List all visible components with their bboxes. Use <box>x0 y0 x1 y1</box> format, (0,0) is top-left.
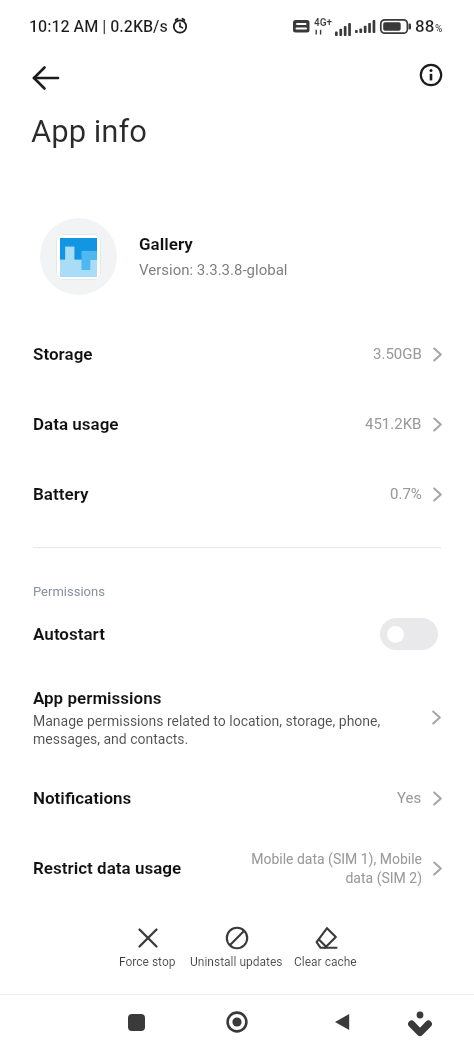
staticText: Version: 3.3.3.8-global <box>139 261 288 279</box>
button[interactable]: App permissions <box>0 676 474 758</box>
button[interactable]: Uninstall updates <box>166 926 306 978</box>
staticText: Autostart <box>33 624 105 644</box>
button[interactable]: Clear cache <box>255 926 395 978</box>
staticText: Data usage <box>33 414 119 434</box>
button[interactable]: Restrict data usage <box>0 833 474 903</box>
staticText: Manage permissions related to location, … <box>33 713 381 748</box>
button[interactable] <box>380 618 438 650</box>
staticText: 451.2KB <box>365 415 422 433</box>
button[interactable] <box>124 1010 148 1034</box>
staticText: Mobile data (SIM 1), Mobile data (SIM 2) <box>251 851 422 886</box>
button[interactable] <box>412 56 450 94</box>
button[interactable]: Data usage <box>0 389 474 459</box>
staticText: App permissions <box>33 688 162 708</box>
staticText: 3.50GB <box>373 345 422 363</box>
staticText: Clear cache <box>294 955 357 969</box>
button[interactable] <box>406 1002 434 1042</box>
button[interactable] <box>330 1010 354 1034</box>
button[interactable]: Autostart <box>0 601 474 667</box>
staticText: % <box>435 23 443 35</box>
staticText: 88 <box>415 16 435 36</box>
staticText: Yes <box>397 789 422 807</box>
staticText: Uninstall updates <box>190 955 283 969</box>
staticText: Battery <box>33 484 89 504</box>
staticText: Restrict data usage <box>33 858 182 878</box>
staticText: App info <box>31 113 147 149</box>
button[interactable]: Notifications <box>0 763 474 833</box>
button[interactable]: Battery <box>0 459 474 529</box>
staticText: Storage <box>33 344 93 364</box>
button[interactable]: Force stop <box>77 926 217 978</box>
staticText: Force stop <box>119 955 176 969</box>
button[interactable] <box>26 58 66 98</box>
button[interactable]: Storage <box>0 319 474 389</box>
staticText: 10:12 AM | 0.2KB/s <box>29 17 168 36</box>
button[interactable] <box>225 1010 249 1034</box>
staticText: 0.7% <box>390 485 422 503</box>
staticText: Notifications <box>33 788 132 808</box>
staticText: Gallery <box>139 234 193 254</box>
staticText: 4G+ <box>314 17 333 29</box>
staticText: Permissions <box>33 584 105 599</box>
